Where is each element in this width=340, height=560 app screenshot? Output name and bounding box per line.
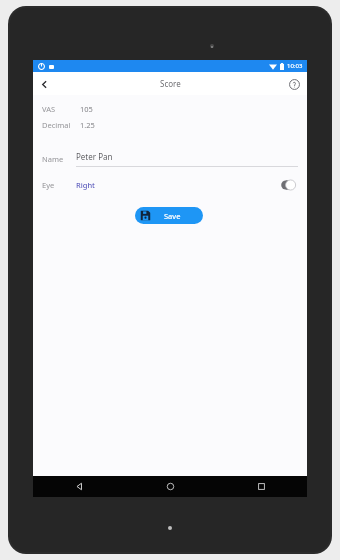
staticText: Peter Pan [76, 151, 113, 162]
button[interactable]: Home [125, 476, 216, 497]
button[interactable]: Toggle eye [279, 178, 299, 192]
button[interactable]: Recent apps [216, 476, 307, 497]
staticText: 10:03 [287, 62, 303, 70]
button[interactable]: Back [33, 73, 55, 95]
staticText: Right [76, 180, 95, 190]
button[interactable]: Help [284, 74, 304, 94]
staticText: Decimal [42, 120, 71, 130]
staticText: Score [160, 78, 181, 89]
staticText: Save [164, 211, 181, 221]
staticText: Name [42, 154, 64, 164]
button[interactable]: Save [135, 207, 203, 224]
staticText: 105 [80, 104, 93, 114]
staticText: VAS [42, 104, 56, 114]
button[interactable]: Back [33, 476, 125, 497]
staticText: 1.25 [80, 120, 95, 130]
staticText: Eye [42, 180, 55, 190]
button[interactable]: Right [76, 180, 95, 190]
button[interactable]: Name [42, 151, 298, 167]
